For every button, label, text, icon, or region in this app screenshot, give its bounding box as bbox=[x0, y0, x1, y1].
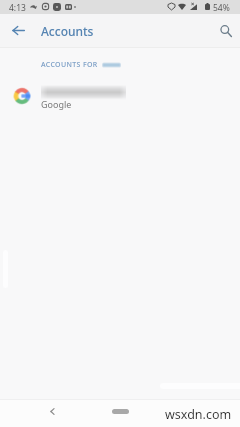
staticText: Google bbox=[41, 98, 72, 110]
staticText: ACCOUNTS FOR bbox=[41, 60, 98, 70]
staticText: 54% bbox=[213, 2, 230, 14]
button[interactable]: Home bbox=[104, 401, 136, 421]
button[interactable]: Google bbox=[0, 80, 240, 114]
staticText: wsxdn.com bbox=[165, 406, 232, 423]
button[interactable]: Back bbox=[1, 14, 35, 47]
staticText: Accounts bbox=[41, 23, 94, 39]
button[interactable]: Back bbox=[42, 401, 62, 421]
staticText: 4:13 bbox=[9, 2, 26, 14]
button[interactable]: Search bbox=[211, 16, 240, 46]
